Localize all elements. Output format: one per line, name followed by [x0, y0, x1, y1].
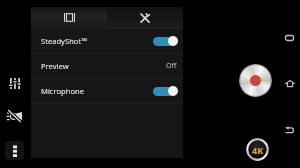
button[interactable]: Microphone	[31, 79, 183, 103]
button[interactable]: Recents	[282, 30, 297, 45]
button[interactable]	[153, 86, 177, 96]
staticText: Preview	[41, 61, 166, 71]
button[interactable]: Adjust settings	[4, 73, 25, 94]
button[interactable]: Video settings tab	[31, 7, 107, 28]
button[interactable]: Tools tab	[107, 7, 183, 28]
button[interactable]: More options	[5, 141, 24, 160]
button[interactable]	[153, 36, 177, 46]
button[interactable]: Record	[239, 64, 272, 97]
button[interactable]: Preview	[31, 54, 183, 78]
staticText: 4K	[252, 144, 264, 156]
staticText: Off	[166, 61, 177, 71]
button[interactable]: 4K video quality	[246, 138, 269, 161]
button[interactable]: SteadyShot™	[31, 29, 183, 53]
button[interactable]: Back	[282, 122, 297, 137]
button[interactable]: Home	[282, 76, 297, 91]
button[interactable]: Flash off	[3, 105, 25, 127]
staticText: Microphone	[41, 86, 153, 96]
staticText: SteadyShot™	[41, 36, 153, 46]
